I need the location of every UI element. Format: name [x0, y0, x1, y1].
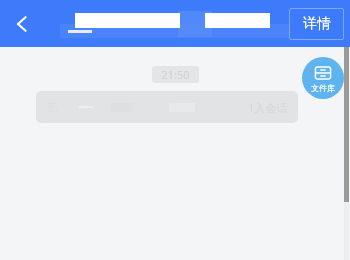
button[interactable]: 详情: [289, 8, 344, 40]
button[interactable]: 文件库: [302, 57, 344, 99]
button[interactable]: Back: [0, 2, 44, 46]
staticText: 21:50: [161, 67, 190, 82]
staticText: 详情: [303, 15, 331, 33]
staticText: 文件库: [311, 83, 335, 93]
staticText: 1入会话: [248, 100, 288, 115]
